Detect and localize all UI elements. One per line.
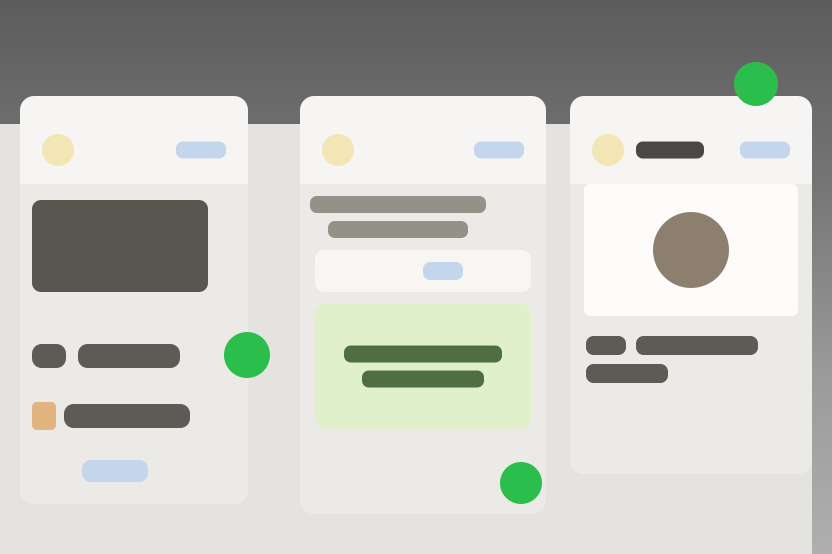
button[interactable]: Account: [42, 134, 74, 166]
button[interactable]: Done: [176, 141, 226, 158]
button[interactable]: Done: [740, 141, 790, 158]
button[interactable]: Reply: [82, 460, 148, 482]
button[interactable]: Done: [474, 141, 524, 158]
button[interactable]: Account: [322, 134, 354, 166]
button[interactable]: Account: [592, 134, 624, 166]
button[interactable]: Change: [423, 262, 463, 280]
